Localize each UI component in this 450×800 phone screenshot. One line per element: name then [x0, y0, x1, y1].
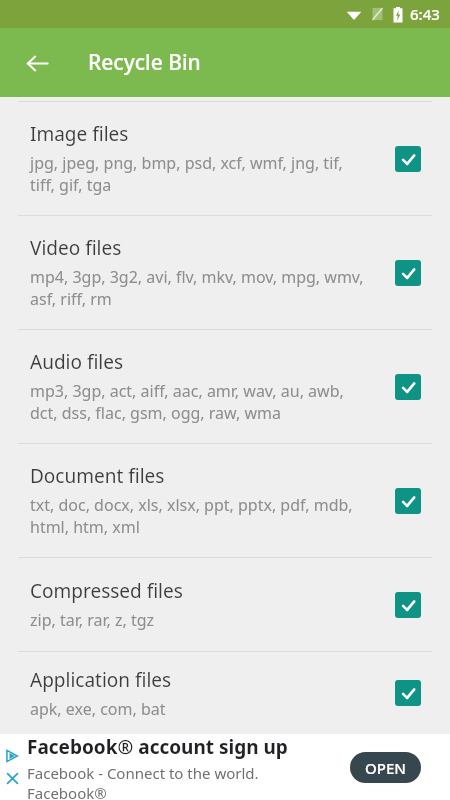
staticText: OPEN [365, 758, 406, 778]
staticText: apk, exe, com, bat [30, 698, 166, 720]
staticText: txt, doc, docx, xls, xlsx, ppt, pptx, pd… [30, 494, 353, 516]
button[interactable]: Application files [0, 652, 450, 734]
staticText: Facebook - Connect to the world. Faceboo… [27, 763, 340, 800]
button[interactable]: Back [14, 40, 60, 86]
staticText: mp4, 3gp, 3g2, avi, flv, mkv, mov, mpg, … [30, 266, 364, 288]
button[interactable]: Toggle file type [388, 367, 428, 407]
staticText: Compressed files [30, 578, 183, 604]
staticText: mp3, 3gp, act, aiff, aac, amr, wav, au, … [30, 380, 344, 402]
staticText: Audio files [30, 349, 124, 375]
staticText: 6:43 [410, 4, 440, 24]
staticText: html, htm, xml [30, 516, 140, 538]
staticText: Image files [30, 121, 129, 147]
staticText: zip, tar, rar, z, tgz [30, 609, 155, 631]
button[interactable]: Toggle file type [388, 253, 428, 293]
staticText: jpg, jpeg, png, bmp, psd, xcf, wmf, jng,… [30, 152, 343, 174]
button[interactable]: Audio files [0, 330, 450, 443]
button[interactable]: Image files [0, 102, 450, 215]
staticText: dct, dss, flac, gsm, ogg, raw, wma [30, 402, 281, 424]
button[interactable]: Toggle file type [388, 585, 428, 625]
button[interactable]: Compressed files [0, 558, 450, 651]
staticText: Video files [30, 235, 122, 261]
staticText: Facebook® account sign up [27, 734, 288, 760]
staticText: asf, riff, rm [30, 288, 112, 310]
button[interactable]: Toggle file type [388, 481, 428, 521]
button[interactable]: Toggle file type [388, 673, 428, 713]
button[interactable]: Video files [0, 216, 450, 329]
button[interactable]: Close ad [3, 769, 21, 787]
button[interactable]: Toggle file type [388, 139, 428, 179]
button[interactable]: OPEN [350, 752, 421, 783]
staticText: Document files [30, 463, 165, 489]
staticText: Application files [30, 667, 172, 693]
button[interactable]: Document files [0, 444, 450, 557]
staticText: Recycle Bin [88, 48, 201, 77]
button[interactable]: Ad choices [3, 747, 21, 765]
staticText: tiff, gif, tga [30, 174, 112, 196]
